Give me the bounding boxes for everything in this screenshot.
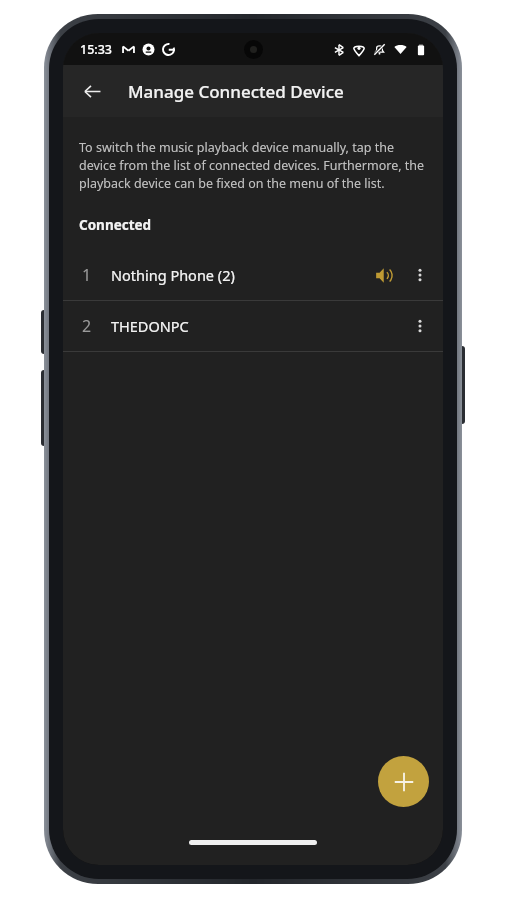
- button[interactable]: More options: [403, 309, 437, 343]
- button[interactable]: Back: [72, 71, 112, 111]
- staticText: 15:33: [80, 41, 113, 58]
- staticText: Manage Connected Device: [128, 80, 344, 103]
- button[interactable]: 1: [63, 250, 443, 300]
- staticText: Nothing Phone (2): [111, 265, 235, 285]
- other: Playing on this device: [367, 258, 401, 292]
- staticText: THEDONPC: [111, 316, 189, 336]
- button[interactable]: 2: [63, 301, 443, 351]
- staticText: 2: [82, 315, 92, 337]
- button[interactable]: Add device: [378, 756, 429, 807]
- button[interactable]: More options: [403, 258, 437, 292]
- staticText: Connected: [79, 216, 152, 234]
- staticText: To switch the music playback device manu…: [79, 139, 429, 192]
- staticText: 1: [82, 264, 92, 286]
